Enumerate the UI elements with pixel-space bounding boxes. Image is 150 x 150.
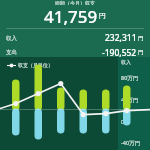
button[interactable]: 総額（今月）収支 [0, 0, 150, 57]
button[interactable]: 収入 [0, 32, 150, 44]
staticText: 収入 [121, 59, 131, 65]
staticText: 収支（月単位） [18, 62, 53, 68]
staticText: 円 [138, 35, 144, 42]
button[interactable]: Monthly income and expense chart [0, 57, 150, 150]
staticText: 円 [138, 49, 144, 56]
button[interactable]: 収支（月単位） [5, 60, 55, 70]
staticText: -40万円 [121, 139, 141, 147]
staticText: 40万円 [121, 96, 139, 104]
staticText: 41,759 [44, 5, 98, 25]
button[interactable]: 支出 [0, 47, 150, 57]
staticText: -190,552 [102, 47, 137, 57]
staticText: 総額（今月）収支 [55, 0, 95, 5]
staticText: 0 [121, 118, 125, 125]
staticText: 80万円 [121, 74, 139, 82]
staticText: 円 [99, 11, 106, 20]
staticText: 収入 [6, 35, 17, 42]
staticText: 232,311 [105, 32, 137, 44]
staticText: 支出 [6, 49, 17, 56]
